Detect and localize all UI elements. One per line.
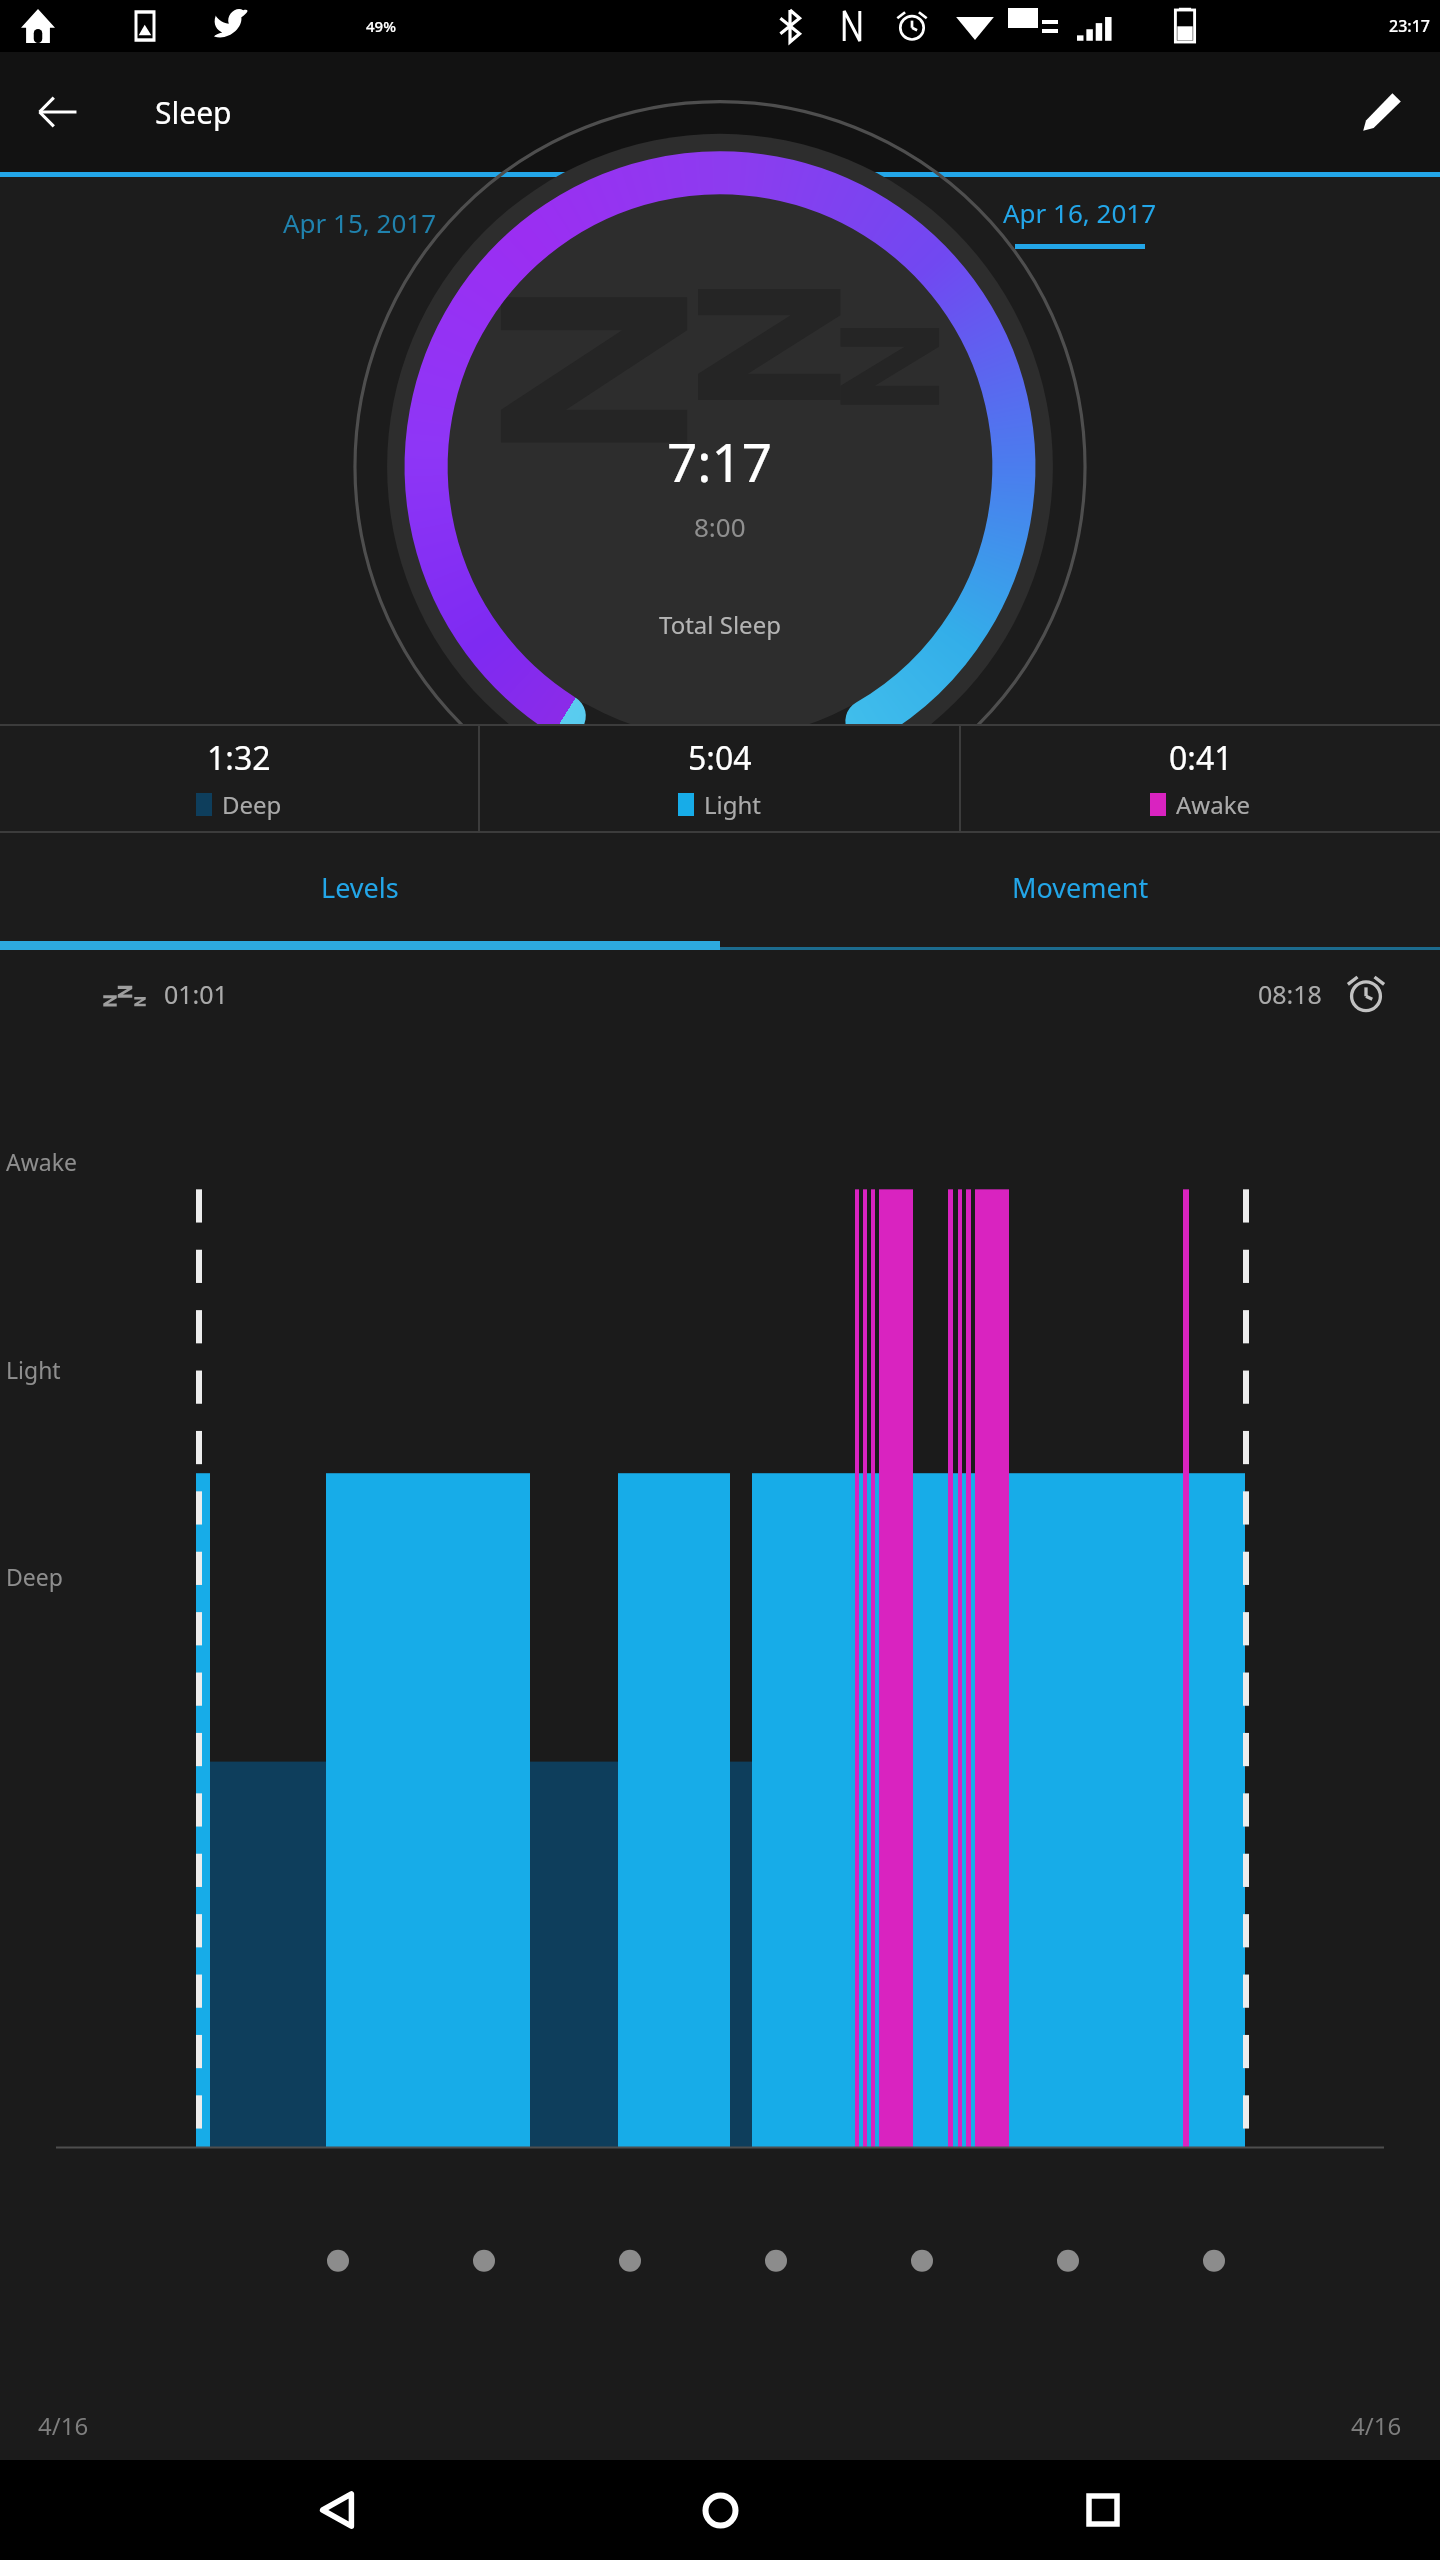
staticText: 5:04 bbox=[688, 736, 752, 780]
button[interactable]: Back bbox=[22, 76, 94, 148]
button[interactable]: Home bbox=[674, 2464, 766, 2556]
button[interactable]: Back bbox=[291, 2464, 383, 2556]
staticText: 49% bbox=[366, 16, 396, 36]
staticText: 8:00 bbox=[694, 509, 746, 544]
button[interactable]: Recents bbox=[1057, 2464, 1149, 2556]
button[interactable]: 0:41 bbox=[961, 726, 1440, 831]
staticText: 7:17 bbox=[667, 425, 773, 497]
staticText: 01:01 bbox=[164, 977, 228, 1011]
button[interactable]: Edit bbox=[1346, 76, 1418, 148]
staticText: 23:17 bbox=[1389, 15, 1430, 37]
staticText: 0:41 bbox=[1169, 736, 1233, 780]
button[interactable]: Movement bbox=[720, 833, 1440, 941]
staticText: Deep bbox=[6, 1561, 63, 1592]
staticText: 1:32 bbox=[207, 736, 271, 780]
staticText: 08:18 bbox=[1258, 977, 1322, 1011]
button[interactable]: Apr 15, 2017 bbox=[0, 177, 720, 267]
staticText: Awake bbox=[6, 1146, 77, 1177]
button[interactable]: Levels bbox=[0, 833, 720, 941]
staticText: Awake bbox=[1176, 788, 1251, 821]
staticText: 4/16 bbox=[38, 2409, 89, 2442]
staticText: Apr 15, 2017 bbox=[283, 205, 437, 240]
staticText: Sleep bbox=[155, 92, 232, 133]
button[interactable]: 5:04 bbox=[480, 726, 959, 831]
button[interactable]: Apr 16, 2017 bbox=[720, 177, 1440, 267]
staticText: Movement bbox=[1012, 869, 1149, 906]
staticText: Total Sleep bbox=[659, 608, 781, 641]
staticText: Light bbox=[6, 1354, 61, 1385]
staticText: Deep bbox=[222, 788, 282, 821]
staticText: Apr 16, 2017 bbox=[1003, 195, 1157, 230]
staticText: Light bbox=[704, 788, 762, 821]
staticText: Levels bbox=[321, 869, 399, 906]
staticText: 4/16 bbox=[1351, 2409, 1402, 2442]
button[interactable]: 1:32 bbox=[0, 726, 478, 831]
